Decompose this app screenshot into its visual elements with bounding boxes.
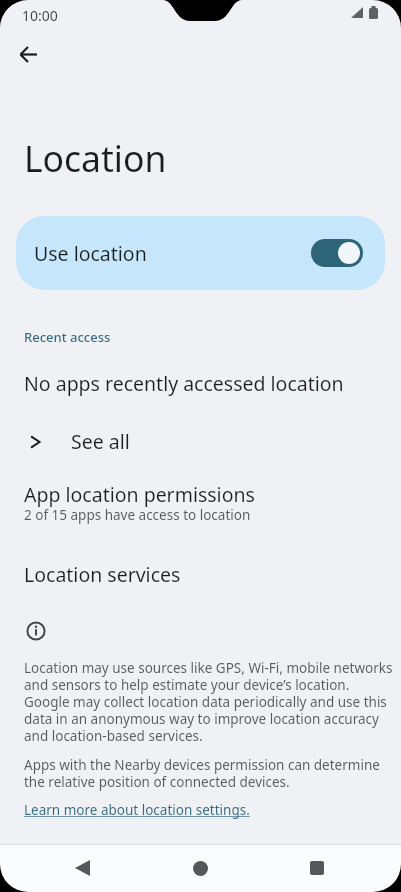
- button[interactable]: See all: [0, 419, 401, 464]
- button[interactable]: Learn more about location settings.: [24, 801, 250, 819]
- staticText: Location: [24, 134, 167, 182]
- staticText: Recent access: [24, 328, 111, 346]
- button[interactable]: [293, 844, 341, 892]
- staticText: Location may use sources like GPS, Wi-Fi…: [24, 659, 393, 745]
- button[interactable]: Use location: [16, 216, 385, 290]
- staticText: Apps with the Nearby devices permission …: [24, 756, 380, 791]
- staticText: Location services: [24, 561, 181, 588]
- staticText: 2 of 15 apps have access to location: [24, 506, 251, 524]
- staticText: App location permissions: [24, 481, 255, 508]
- staticText: 10:00: [22, 6, 58, 25]
- staticText: Use location: [34, 240, 147, 267]
- staticText: See all: [71, 428, 130, 455]
- button[interactable]: [176, 844, 224, 892]
- button[interactable]: Location services: [0, 556, 401, 592]
- button[interactable]: App location permissions: [0, 476, 401, 532]
- staticText: No apps recently accessed location: [24, 370, 344, 397]
- button[interactable]: [4, 30, 52, 78]
- button[interactable]: [58, 844, 106, 892]
